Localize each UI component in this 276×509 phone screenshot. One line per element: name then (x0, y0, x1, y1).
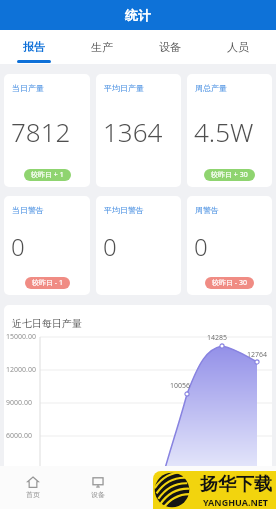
staticText: 6000.00 (6, 431, 32, 441)
staticText: 较昨日 - 1 (32, 278, 63, 288)
button[interactable]: 设备 (136, 30, 204, 64)
staticText: 生产 (91, 40, 113, 54)
button[interactable]: 报告 (0, 30, 68, 64)
staticText: 7812 (11, 114, 71, 149)
staticText: 报告 (23, 40, 45, 54)
button[interactable]: 平均日警告 (96, 196, 181, 295)
staticText: 我的 (221, 490, 235, 499)
button[interactable]: 当日产量 (4, 74, 90, 187)
staticText: 较昨日 + 1 (31, 170, 64, 180)
staticText: 0 (11, 230, 25, 263)
button[interactable]: 设备 (65, 476, 130, 499)
staticText: 周警告 (195, 205, 219, 215)
staticText: YANGHUA.NET (203, 496, 269, 508)
staticText: 当日产量 (12, 83, 44, 93)
staticText: 统计 (125, 7, 151, 23)
button[interactable]: 首页 (0, 476, 65, 499)
staticText: 设备 (159, 40, 181, 54)
staticText: 15000.00 (6, 332, 36, 342)
button[interactable]: 生产 (68, 30, 136, 64)
staticText: 较昨日 + 30 (211, 170, 248, 180)
staticText: 较昨日 - 30 (212, 278, 247, 288)
staticText: 4.5W (194, 114, 254, 149)
staticText: 扬华下载 (200, 473, 272, 496)
staticText: 0 (194, 230, 208, 263)
button[interactable]: 统计 (130, 476, 195, 499)
staticText: 12000.00 (6, 365, 36, 375)
staticText: 平均日产量 (104, 83, 144, 93)
button[interactable]: 平均日产量 (96, 74, 181, 187)
button[interactable]: 我的 (195, 476, 260, 499)
staticText: 1364 (103, 114, 163, 149)
staticText: 平均日警告 (104, 205, 144, 215)
button[interactable]: 周总产量 (187, 74, 272, 187)
staticText: 统计 (156, 490, 170, 499)
staticText: 0 (103, 230, 117, 263)
button[interactable]: 人员 (204, 30, 272, 64)
button[interactable]: 周警告 (187, 196, 272, 295)
button[interactable]: 当日警告 (4, 196, 90, 295)
staticText: 9000.00 (6, 398, 32, 408)
staticText: 当日警告 (12, 205, 44, 215)
staticText: 14285 (207, 333, 228, 343)
staticText: 近七日每日产量 (12, 317, 82, 330)
staticText: 周总产量 (195, 83, 227, 93)
staticText: 人员 (227, 40, 249, 54)
staticText: 12764 (247, 350, 268, 360)
staticText: 首页 (26, 490, 40, 499)
staticText: 设备 (91, 490, 105, 499)
staticText: 10056 (170, 381, 191, 391)
